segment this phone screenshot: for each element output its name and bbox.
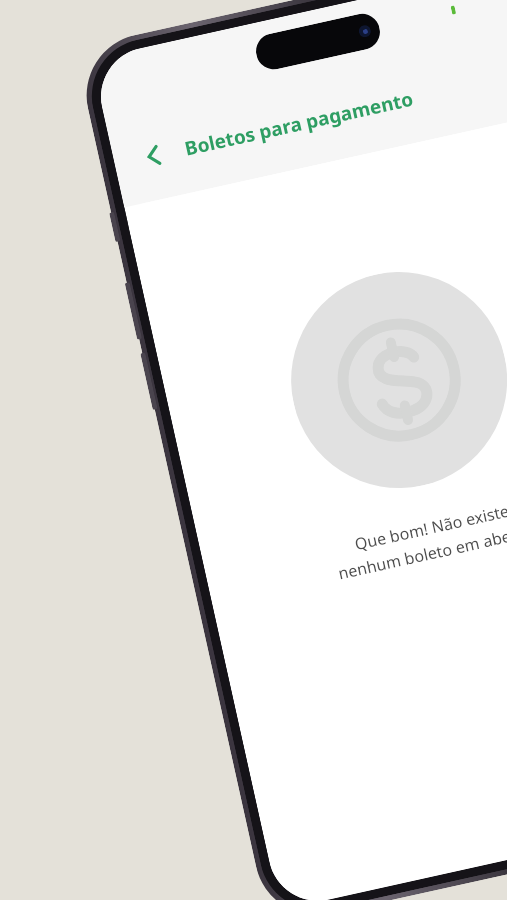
- staticText: Boletos para pagamento: [182, 86, 416, 162]
- button[interactable]: Voltar: [125, 127, 182, 184]
- staticText: Que bom! Não existe nenhum boleto em abe…: [273, 482, 507, 596]
